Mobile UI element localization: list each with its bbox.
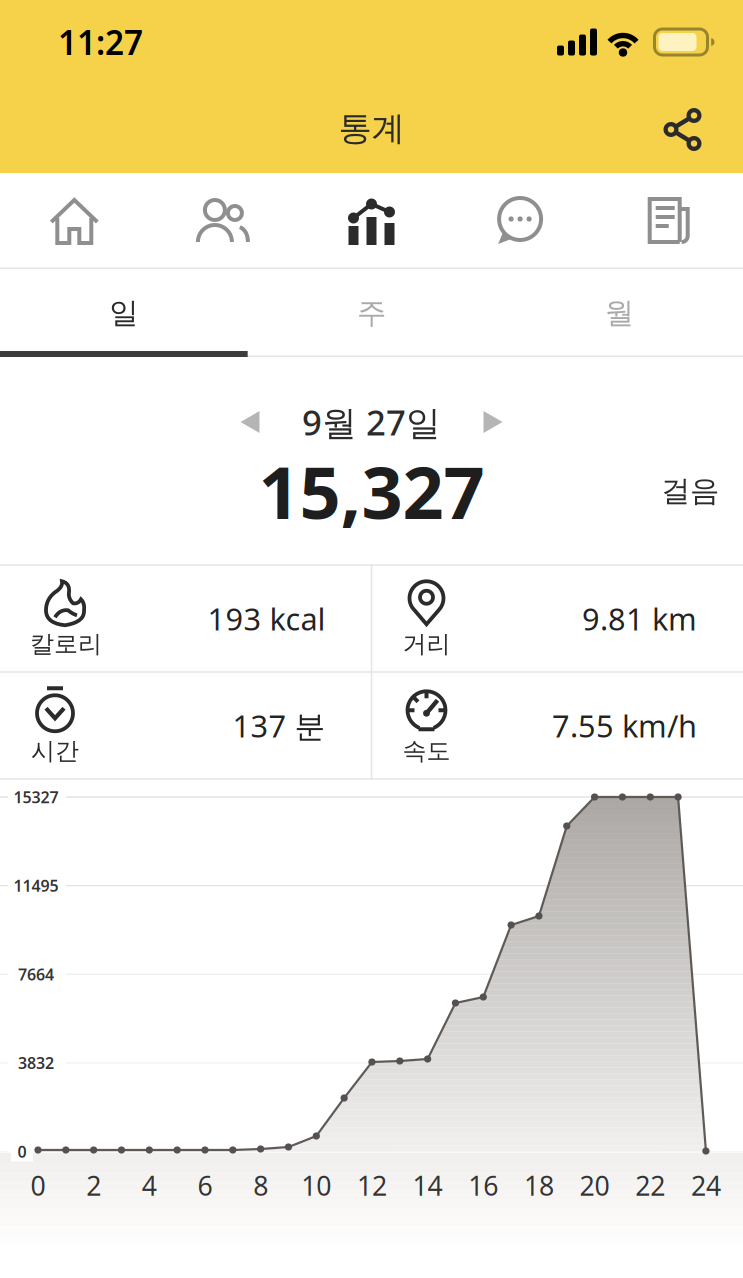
staticText: 거리 [402, 629, 450, 659]
staticText: 6 [197, 1168, 212, 1203]
staticText: 일 [109, 295, 138, 331]
button[interactable]: 일 [0, 269, 248, 357]
staticText: 통계 [338, 108, 404, 149]
staticText: 137 분 [232, 705, 325, 746]
staticText: 걸음 [661, 473, 719, 509]
staticText: 10 [301, 1168, 331, 1203]
button[interactable]: Share [661, 102, 705, 154]
staticText: 0 [17, 1141, 26, 1162]
staticText: 9월 27일 [302, 399, 441, 445]
staticText: 속도 [402, 736, 450, 766]
staticText: 0 [30, 1168, 45, 1203]
staticText: 칼로리 [30, 629, 102, 659]
staticText: 18 [524, 1168, 554, 1203]
staticText: 7664 [18, 964, 54, 985]
staticText: 4 [142, 1168, 157, 1203]
staticText: 3832 [18, 1052, 54, 1073]
staticText: 12 [357, 1168, 387, 1203]
staticText: 24 [691, 1168, 721, 1203]
staticText: 월 [605, 295, 634, 331]
button[interactable]: 월 [495, 269, 743, 357]
staticText: 주 [357, 295, 386, 331]
button[interactable]: News [594, 173, 743, 269]
staticText: 22 [635, 1168, 665, 1203]
button[interactable]: Chat [446, 173, 594, 269]
staticText: 11495 [13, 875, 58, 896]
staticText: 15327 [13, 786, 58, 808]
staticText: 시간 [31, 736, 79, 766]
staticText: 9.81 km [582, 598, 697, 639]
staticText: 16 [468, 1168, 498, 1203]
staticText: 11:27 [58, 20, 143, 64]
staticText: 14 [413, 1168, 443, 1203]
button[interactable]: Previous day [238, 410, 261, 434]
staticText: 7.55 km/h [552, 705, 697, 746]
staticText: 193 kcal [207, 598, 325, 639]
button[interactable]: Next day [481, 410, 504, 434]
staticText: 20 [580, 1168, 610, 1203]
button[interactable]: Statistics [297, 173, 446, 269]
staticText: 8 [253, 1168, 268, 1203]
button[interactable]: 주 [248, 269, 495, 357]
staticText: 2 [86, 1168, 101, 1203]
staticText: 15,327 [258, 443, 484, 539]
button[interactable]: Home [0, 173, 149, 269]
button[interactable]: Friends [149, 173, 297, 269]
